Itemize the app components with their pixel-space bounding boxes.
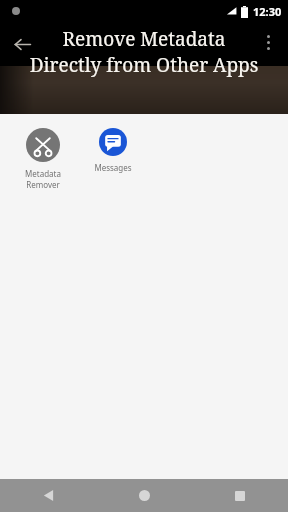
button[interactable]: Back bbox=[0, 479, 96, 512]
staticText: 12:30 bbox=[253, 4, 282, 19]
button[interactable]: Home bbox=[96, 479, 192, 512]
button[interactable]: Recent apps bbox=[192, 479, 288, 512]
staticText: Messages bbox=[94, 162, 132, 173]
button[interactable]: Messages bbox=[78, 124, 148, 177]
staticText: Remove Metadata Directly from Other Apps bbox=[8, 26, 280, 78]
button[interactable]: More options bbox=[248, 22, 288, 62]
button[interactable]: Metadata Remover bbox=[8, 124, 78, 194]
button[interactable]: Navigate up bbox=[0, 22, 44, 66]
staticText: Metadata Remover bbox=[25, 168, 61, 190]
